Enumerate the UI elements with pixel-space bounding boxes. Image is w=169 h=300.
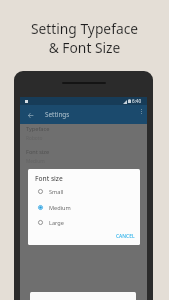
staticText: Small [49,188,64,196]
staticText: Font size [26,148,50,156]
staticText: Setting Typeface & Font Size [0,19,169,57]
staticText: 6:40 [132,98,142,104]
staticText: Medium [49,204,71,212]
staticText: Font size [35,174,63,183]
button[interactable]: CANCEL [113,231,137,242]
button[interactable]: Large [28,216,140,229]
button[interactable]: Small [28,185,140,198]
staticText: CANCEL [116,233,135,240]
button[interactable]: More options [135,105,147,117]
button[interactable]: Back [24,109,36,121]
staticText: Large [49,219,64,227]
staticText: Settings [45,110,70,119]
staticText: Typeface [26,125,50,133]
button[interactable]: Medium [28,201,140,214]
